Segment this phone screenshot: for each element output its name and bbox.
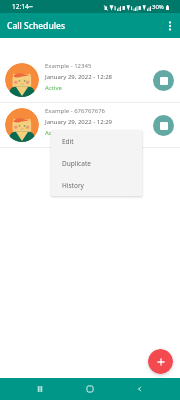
staticText: Active xyxy=(45,129,62,137)
button[interactable]: Duplicate xyxy=(51,152,142,174)
staticText: History xyxy=(62,181,84,190)
button[interactable]: More options xyxy=(160,16,180,36)
button[interactable]: Stop xyxy=(153,115,174,136)
button[interactable]: Example - 676767676 xyxy=(0,103,180,147)
staticText: Example - 12345 xyxy=(45,62,92,70)
staticText: January 29, 2022 - 12:29 xyxy=(45,118,113,126)
staticText: 12:14 xyxy=(12,2,29,11)
button[interactable]: Edit xyxy=(51,130,142,152)
staticText: Edit xyxy=(62,137,74,146)
button[interactable]: Recents xyxy=(30,379,50,399)
button[interactable]: Back xyxy=(130,379,150,399)
staticText: 30% xyxy=(152,3,164,11)
staticText: Call Schedules xyxy=(7,20,66,32)
button[interactable]: History xyxy=(51,174,142,196)
staticText: Duplicate xyxy=(62,159,91,168)
staticText: Example - 676767676 xyxy=(45,107,106,115)
staticText: Active xyxy=(45,84,62,92)
button[interactable]: Add xyxy=(148,349,173,374)
staticText: January 29, 2022 - 12:28 xyxy=(45,73,113,81)
button[interactable]: Home xyxy=(80,379,100,399)
button[interactable]: Example - 12345 xyxy=(0,58,180,102)
button[interactable]: Stop xyxy=(153,70,174,91)
